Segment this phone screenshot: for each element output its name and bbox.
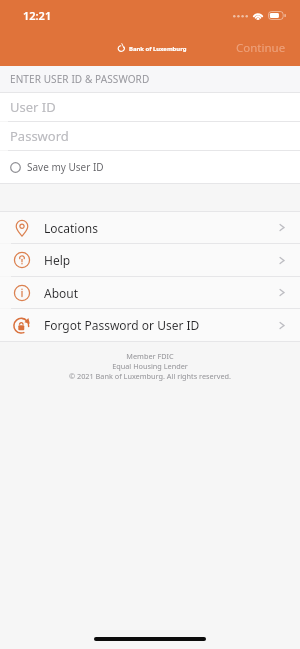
staticText: 12:21 <box>23 8 52 23</box>
staticText: Member FDIC <box>126 351 174 361</box>
other: Locations <box>13 219 31 237</box>
button[interactable]: Password <box>0 122 300 150</box>
staticText: Bank of Luxemburg <box>129 45 187 53</box>
staticText: © 2021 Bank of Luxemburg. All rights res… <box>69 371 231 381</box>
staticText: Continue <box>236 40 286 56</box>
staticText: Locations <box>44 220 98 236</box>
other: Forgot Password or User ID <box>13 316 31 334</box>
other: About <box>13 284 31 302</box>
staticText: About <box>44 285 79 301</box>
button[interactable]: Locations <box>0 212 300 243</box>
staticText: ENTER USER ID & PASSWORD <box>10 72 150 86</box>
staticText: Help <box>44 252 71 268</box>
button[interactable]: Save my User ID <box>0 151 300 183</box>
staticText: Password <box>10 127 69 145</box>
staticText: Save my User ID <box>27 160 104 174</box>
button[interactable]: User ID <box>0 93 300 121</box>
button[interactable]: About <box>0 277 300 308</box>
button[interactable]: Forgot Password or User ID <box>0 309 300 341</box>
staticText: User ID <box>10 98 56 116</box>
button[interactable]: Help <box>0 244 300 276</box>
other: Help <box>13 251 31 269</box>
staticText: Forgot Password or User ID <box>44 317 200 333</box>
button[interactable]: Continue <box>222 35 300 61</box>
staticText: Equal Housing Lender <box>112 361 188 371</box>
